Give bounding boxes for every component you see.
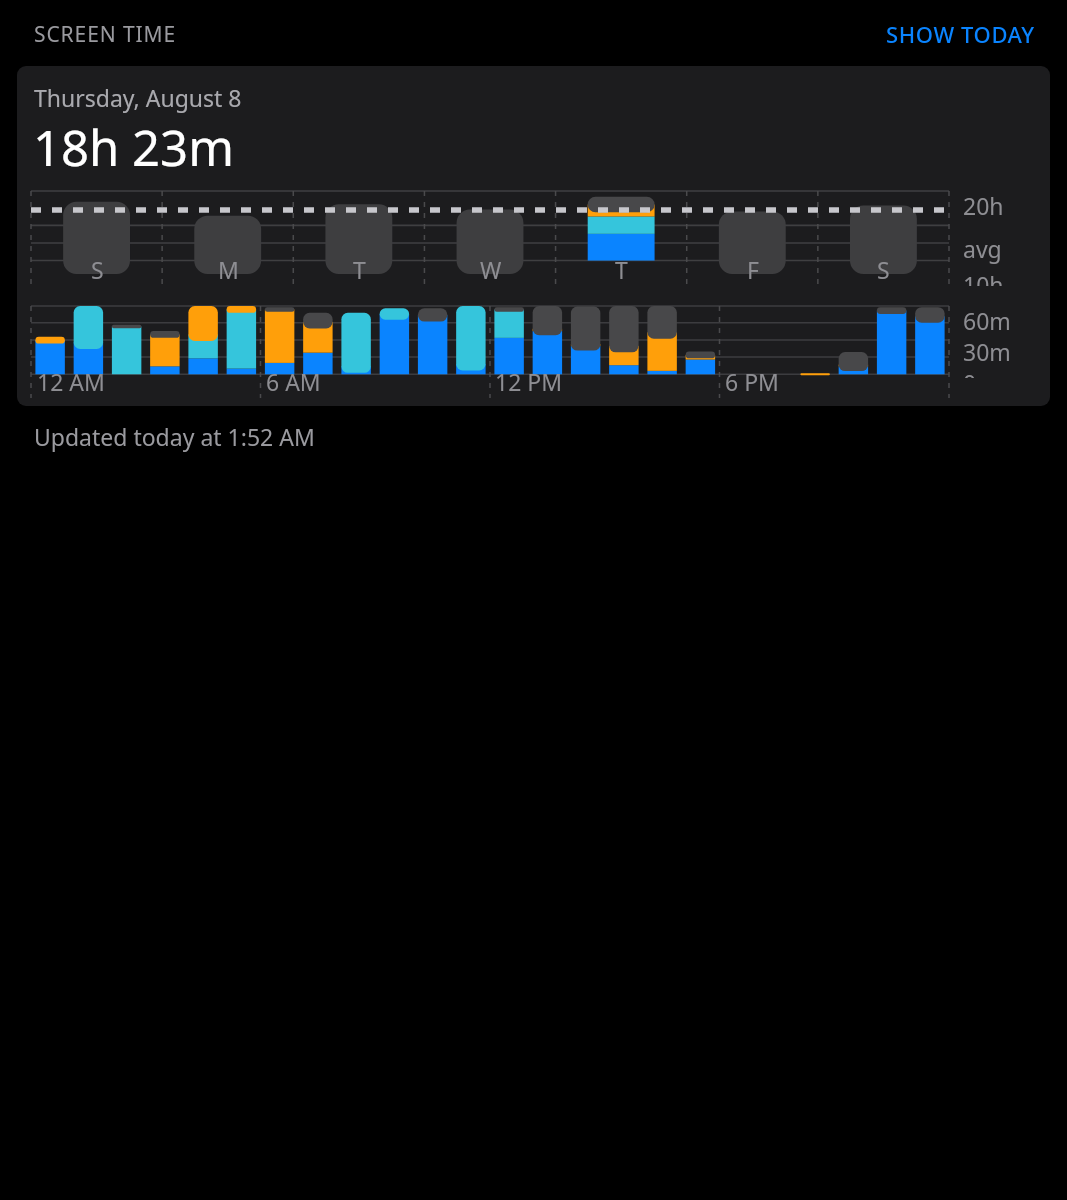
staticText: W: [480, 254, 502, 285]
staticText: 10h: [963, 269, 1004, 286]
staticText: 0: [963, 367, 977, 378]
staticText: 20h: [963, 190, 1004, 221]
staticText: T: [353, 254, 366, 285]
staticText: S: [877, 254, 890, 285]
staticText: 6 AM: [266, 366, 321, 397]
staticText: SHOW TODAY: [886, 19, 1035, 49]
staticText: 12 AM: [37, 366, 105, 397]
staticText: avg: [963, 233, 1002, 264]
staticText: 18h 23m: [33, 114, 234, 181]
staticText: T: [615, 254, 628, 285]
staticText: 12 PM: [495, 366, 563, 397]
staticText: 60m: [963, 305, 1011, 336]
staticText: F: [747, 254, 759, 285]
staticText: Thursday, August 8: [34, 82, 242, 113]
button[interactable]: SHOW TODAY: [886, 19, 1035, 49]
staticText: M: [218, 254, 239, 285]
staticText: 6 PM: [725, 366, 779, 397]
staticText: 30m: [963, 336, 1011, 367]
button[interactable]: Thursday, August 8: [17, 66, 1050, 406]
staticText: SCREEN TIME: [34, 20, 177, 49]
staticText: Updated today at 1:52 AM: [34, 421, 315, 452]
staticText: S: [91, 254, 104, 285]
